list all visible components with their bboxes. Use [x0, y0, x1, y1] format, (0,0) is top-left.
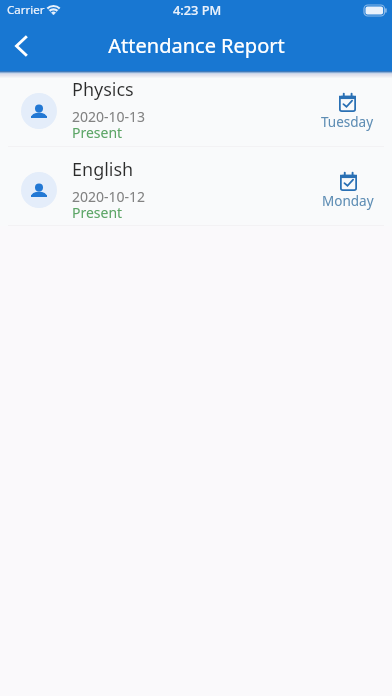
staticText: Carrier	[7, 2, 45, 18]
staticText: Present	[72, 203, 123, 222]
staticText: 2020-10-13	[72, 107, 146, 126]
staticText: Tuesday	[321, 113, 374, 131]
staticText: 4:23 PM	[173, 1, 222, 18]
button[interactable]: Tuesday	[318, 91, 377, 131]
staticText: Present	[72, 123, 123, 142]
staticText: Attendance Report	[108, 32, 285, 59]
staticText: 2020-10-12	[72, 187, 146, 206]
staticText: English	[72, 157, 134, 182]
button[interactable]: Physics	[0, 71, 392, 146]
staticText: Monday	[322, 192, 374, 210]
button[interactable]: English	[0, 147, 392, 225]
staticText: Physics	[72, 77, 134, 102]
button[interactable]: Monday	[319, 170, 377, 210]
button[interactable]: Back	[1, 26, 45, 70]
